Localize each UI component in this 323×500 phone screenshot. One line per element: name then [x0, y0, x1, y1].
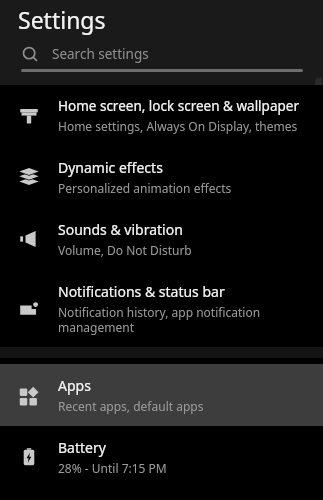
staticText: 28% - Until 7:15 PM [58, 460, 167, 476]
staticText: Recent apps, default apps [58, 398, 204, 414]
staticText: Sounds & vibration [58, 220, 183, 239]
staticText: Battery [58, 438, 106, 457]
staticText: Settings [18, 4, 106, 35]
button[interactable]: Home screen, lock screen & wallpaper [0, 85, 323, 146]
staticText: Home screen, lock screen & wallpaper [58, 97, 299, 115]
other: Search [22, 46, 39, 63]
button[interactable]: Battery [0, 426, 323, 488]
staticText: Home settings, Always On Display, themes [58, 118, 298, 134]
button[interactable]: Search [0, 40, 323, 68]
staticText: Notifications & status bar [58, 282, 225, 301]
staticText: Apps [58, 376, 91, 395]
button[interactable]: Apps [0, 364, 323, 426]
staticText: Personalized animation effects [58, 180, 232, 196]
button[interactable]: Sounds & vibration [0, 208, 323, 270]
staticText: Dynamic effects [58, 158, 163, 177]
staticText: Notification history, app notification m… [58, 304, 307, 335]
button[interactable]: Dynamic effects [0, 146, 323, 208]
button[interactable]: Notifications & status bar [0, 270, 323, 347]
staticText: Search settings [52, 45, 149, 63]
staticText: Volume, Do Not Disturb [58, 242, 192, 258]
